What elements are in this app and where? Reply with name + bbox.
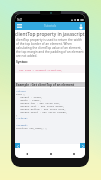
staticText: #id1 { <box>16 92 25 95</box>
staticText: } <box>16 113 18 116</box>
button[interactable]: Menu <box>15 22 24 30</box>
button[interactable]: Next <box>80 143 85 150</box>
staticText: </style> <box>16 116 28 119</box>
staticText: Syntax: <box>16 60 28 64</box>
staticText: Tutorials <box>44 24 57 28</box>
staticText: var elem = element.clientTop; <box>19 68 63 71</box>
staticText: function fun_name() { <box>16 126 47 129</box>
staticText: clientTop property is used to return the… <box>16 38 84 58</box>
button[interactable]: Back <box>15 148 39 158</box>
staticText: width : 210px; <box>16 98 41 101</box>
staticText: border-left : 5px solid green; <box>16 104 65 107</box>
staticText: border-top : 5px solid red; <box>16 101 60 104</box>
staticText: <style> <box>16 89 27 92</box>
button[interactable]: Home <box>39 148 62 158</box>
staticText: <script> <box>16 123 28 126</box>
button[interactable]: Account <box>76 22 85 30</box>
staticText: height : 210px; <box>16 95 43 98</box>
staticText: 9:41 <box>17 18 23 22</box>
button[interactable]: Recents <box>62 148 85 158</box>
staticText: clientTop property in javascript <box>15 31 85 38</box>
staticText: border-right : 5px solid orange; <box>16 110 68 113</box>
staticText: Example : Get clientTop of an element <box>16 83 75 87</box>
staticText: border-bottom : 5px solid blue; <box>16 107 66 110</box>
button[interactable]: Previous <box>15 143 20 150</box>
